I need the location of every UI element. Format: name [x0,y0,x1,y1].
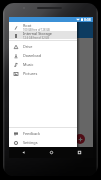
staticText: 8:08 [84,17,91,22]
button[interactable]: Root [9,23,77,31]
button[interactable]: Add [75,134,85,144]
staticText: Music [23,62,34,67]
button[interactable]: Download [9,51,77,60]
button[interactable]: Feedback [9,129,77,138]
button[interactable]: Drive [9,42,77,51]
button[interactable]: Back [9,147,37,158]
staticText: Download [23,53,42,58]
staticText: Pictures [23,71,38,76]
staticText: Feedback [23,131,40,136]
button[interactable]: Settings [9,138,77,147]
staticText: 12.6 GB free of 32 GB [23,36,49,39]
staticText: Root [23,23,32,28]
button[interactable]: Pictures [9,69,77,78]
button[interactable]: Home [37,147,65,158]
button[interactable]: Internal Storage [9,31,77,39]
staticText: 100 GB free of 128 GB [23,28,50,31]
button[interactable]: Recent apps [65,147,93,158]
staticText: Settings [23,140,38,145]
button[interactable]: Music [9,60,77,69]
staticText: Drive [23,44,33,49]
staticText: Internal Storage [23,31,53,36]
